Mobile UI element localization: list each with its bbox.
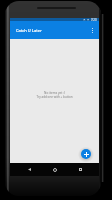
staticText: No items yet :( [44, 91, 65, 95]
button[interactable]: More options [85, 23, 99, 37]
staticText: 7:20 [91, 18, 97, 21]
button[interactable]: Add [81, 149, 91, 159]
button[interactable]: Home [48, 163, 61, 176]
staticText: Catch U Later [16, 28, 42, 33]
button[interactable]: Back [23, 163, 36, 176]
staticText: Try add one with + button [36, 95, 73, 99]
button[interactable]: Recents [74, 163, 87, 176]
